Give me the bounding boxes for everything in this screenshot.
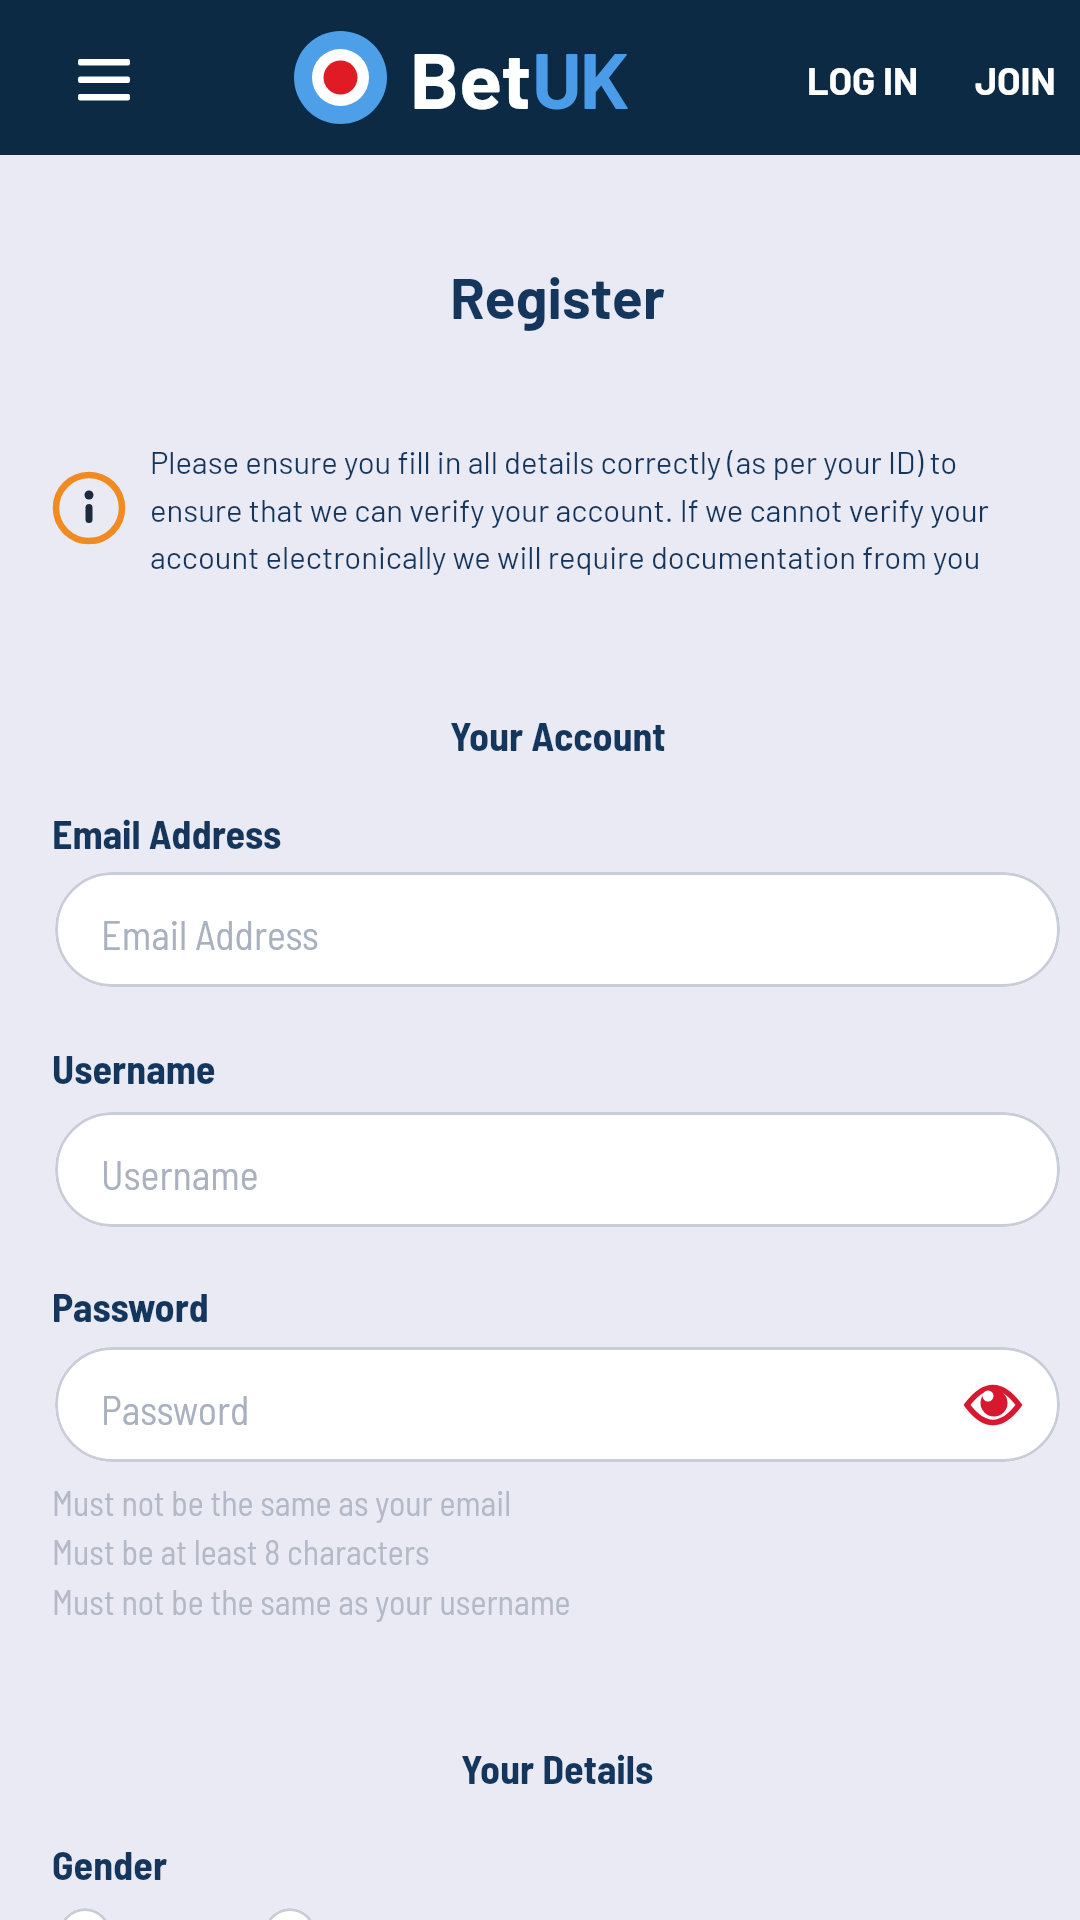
button[interactable]: Username xyxy=(55,1112,1060,1227)
button[interactable]: LOG IN xyxy=(807,57,919,103)
button[interactable] xyxy=(264,1908,316,1920)
button[interactable]: Bet xyxy=(294,0,628,155)
staticText: Password xyxy=(52,1282,209,1330)
staticText: Bet xyxy=(410,30,532,125)
staticText: Username xyxy=(52,1044,216,1092)
staticText: Username xyxy=(101,1150,259,1198)
button[interactable] xyxy=(59,1908,111,1920)
button[interactable]: Email Address xyxy=(55,872,1060,987)
staticText: Your Account xyxy=(450,711,666,759)
staticText: JOIN xyxy=(975,57,1056,103)
staticText: LOG IN xyxy=(807,57,919,103)
staticText: Password xyxy=(101,1385,250,1433)
button[interactable]: JOIN xyxy=(975,57,1056,103)
staticText: Email Address xyxy=(52,809,282,857)
staticText: Please ensure you fill in all details co… xyxy=(150,443,989,575)
staticText: UK xyxy=(532,30,628,125)
button[interactable]: Password xyxy=(55,1347,1060,1462)
staticText: Must not be the same as your email Must … xyxy=(52,1482,571,1622)
staticText: Gender xyxy=(52,1840,168,1888)
staticText: Your Details xyxy=(461,1744,654,1792)
button[interactable] xyxy=(66,46,142,112)
staticText: Register xyxy=(450,262,665,330)
staticText: Email Address xyxy=(101,910,319,958)
